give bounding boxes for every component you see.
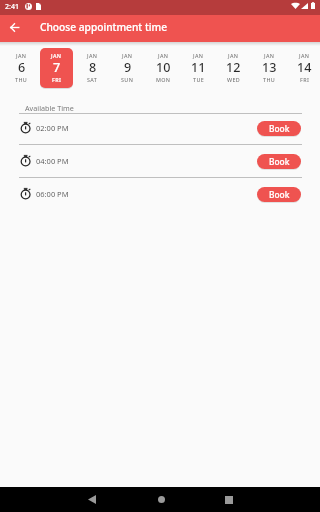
button[interactable]: Back: [1, 14, 27, 40]
button[interactable]: JAN: [253, 48, 286, 88]
staticText: JAN: [158, 52, 169, 59]
staticText: JAN: [228, 52, 239, 59]
staticText: JAN: [299, 52, 310, 59]
staticText: JAN: [193, 52, 204, 59]
staticText: JAN: [264, 52, 275, 59]
staticText: 7: [53, 59, 61, 76]
staticText: 2:41: [5, 2, 19, 12]
button[interactable]: Book: [257, 121, 301, 136]
button[interactable]: Home: [149, 487, 173, 512]
button[interactable]: 02:00 PM: [0, 112, 320, 144]
staticText: Book: [269, 156, 290, 167]
staticText: 12: [226, 59, 241, 76]
staticText: JAN: [51, 52, 62, 59]
staticText: TUE: [193, 76, 205, 83]
staticText: 14: [297, 59, 312, 76]
staticText: JAN: [16, 52, 27, 59]
staticText: FRI: [52, 76, 62, 83]
button[interactable]: JAN: [5, 48, 38, 88]
staticText: Available Time: [25, 103, 74, 113]
staticText: FRI: [300, 76, 310, 83]
button[interactable]: Back: [80, 487, 104, 512]
staticText: Book: [269, 189, 290, 200]
staticText: 02:00 PM: [36, 123, 69, 133]
staticText: 04:00 PM: [36, 156, 69, 166]
button[interactable]: JAN: [76, 48, 109, 88]
staticText: WED: [227, 76, 241, 83]
button[interactable]: Book: [257, 187, 301, 202]
staticText: 10: [156, 59, 171, 76]
staticText: SAT: [87, 76, 98, 83]
staticText: Book: [269, 123, 290, 134]
button[interactable]: JAN: [217, 48, 250, 88]
button[interactable]: Recent apps: [217, 487, 241, 512]
button[interactable]: 06:00 PM: [0, 178, 320, 210]
staticText: 06:00 PM: [36, 189, 69, 199]
button[interactable]: JAN: [40, 48, 73, 88]
staticText: 11: [191, 59, 206, 76]
button[interactable]: JAN: [182, 48, 215, 88]
button[interactable]: JAN: [111, 48, 144, 88]
staticText: JAN: [122, 52, 133, 59]
staticText: 6: [18, 59, 26, 76]
button[interactable]: JAN: [147, 48, 180, 88]
staticText: SUN: [121, 76, 134, 83]
staticText: 8: [89, 59, 97, 76]
staticText: 9: [124, 59, 132, 76]
staticText: THU: [263, 76, 276, 83]
button[interactable]: 04:00 PM: [0, 145, 320, 177]
staticText: MON: [156, 76, 171, 83]
staticText: Choose appointment time: [40, 20, 168, 34]
button[interactable]: JAN: [288, 48, 320, 88]
button[interactable]: Book: [257, 154, 301, 169]
staticText: JAN: [87, 52, 98, 59]
staticText: 13: [262, 59, 277, 76]
staticText: THU: [15, 76, 28, 83]
